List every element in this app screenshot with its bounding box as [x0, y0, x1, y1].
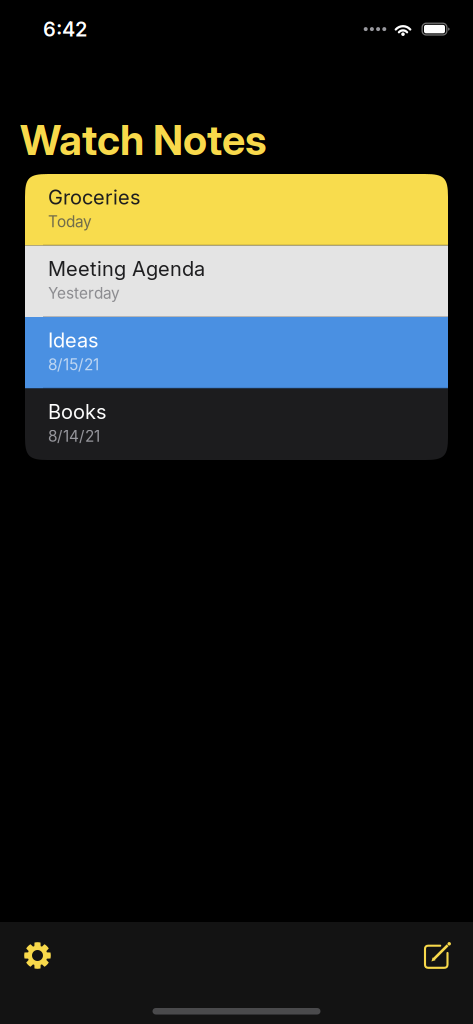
button[interactable]: Meeting Agenda: [25, 245, 448, 317]
staticText: Ideas: [48, 328, 98, 352]
staticText: 6:42: [43, 17, 87, 41]
staticText: Meeting Agenda: [48, 257, 205, 281]
staticText: Books: [48, 400, 106, 424]
button[interactable]: Groceries: [25, 174, 448, 245]
staticText: Groceries: [48, 185, 140, 209]
staticText: 8/15/21: [48, 355, 99, 374]
staticText: Yesterday: [48, 284, 120, 302]
button[interactable]: Books: [25, 388, 448, 460]
staticText: Watch Notes: [20, 115, 267, 165]
button[interactable]: Ideas: [25, 317, 448, 388]
button[interactable]: New Note: [415, 931, 459, 979]
staticText: 8/14/21: [48, 427, 100, 445]
staticText: Today: [48, 212, 92, 231]
button[interactable]: Settings: [16, 932, 59, 979]
